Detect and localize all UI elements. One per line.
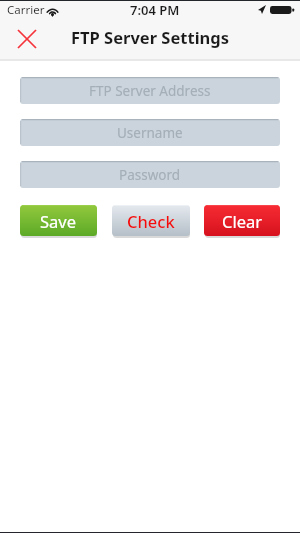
staticText: Username bbox=[117, 124, 183, 142]
button[interactable]: Close bbox=[11, 23, 42, 54]
button[interactable]: Clear bbox=[204, 205, 280, 236]
staticText: Password bbox=[119, 166, 181, 184]
button[interactable]: Check bbox=[112, 205, 190, 236]
staticText: FTP Server Address bbox=[89, 82, 211, 100]
staticText: Save bbox=[40, 210, 77, 232]
staticText: 7:04 PM bbox=[130, 1, 180, 19]
button[interactable]: Username bbox=[20, 119, 280, 146]
staticText: FTP Server Settings bbox=[71, 26, 230, 48]
staticText: Carrier bbox=[7, 2, 45, 18]
button[interactable]: Save bbox=[20, 205, 97, 236]
staticText: Check bbox=[127, 210, 175, 232]
staticText: Clear bbox=[222, 210, 263, 232]
button[interactable]: Password bbox=[20, 161, 280, 188]
button[interactable]: FTP Server Address bbox=[20, 77, 280, 104]
